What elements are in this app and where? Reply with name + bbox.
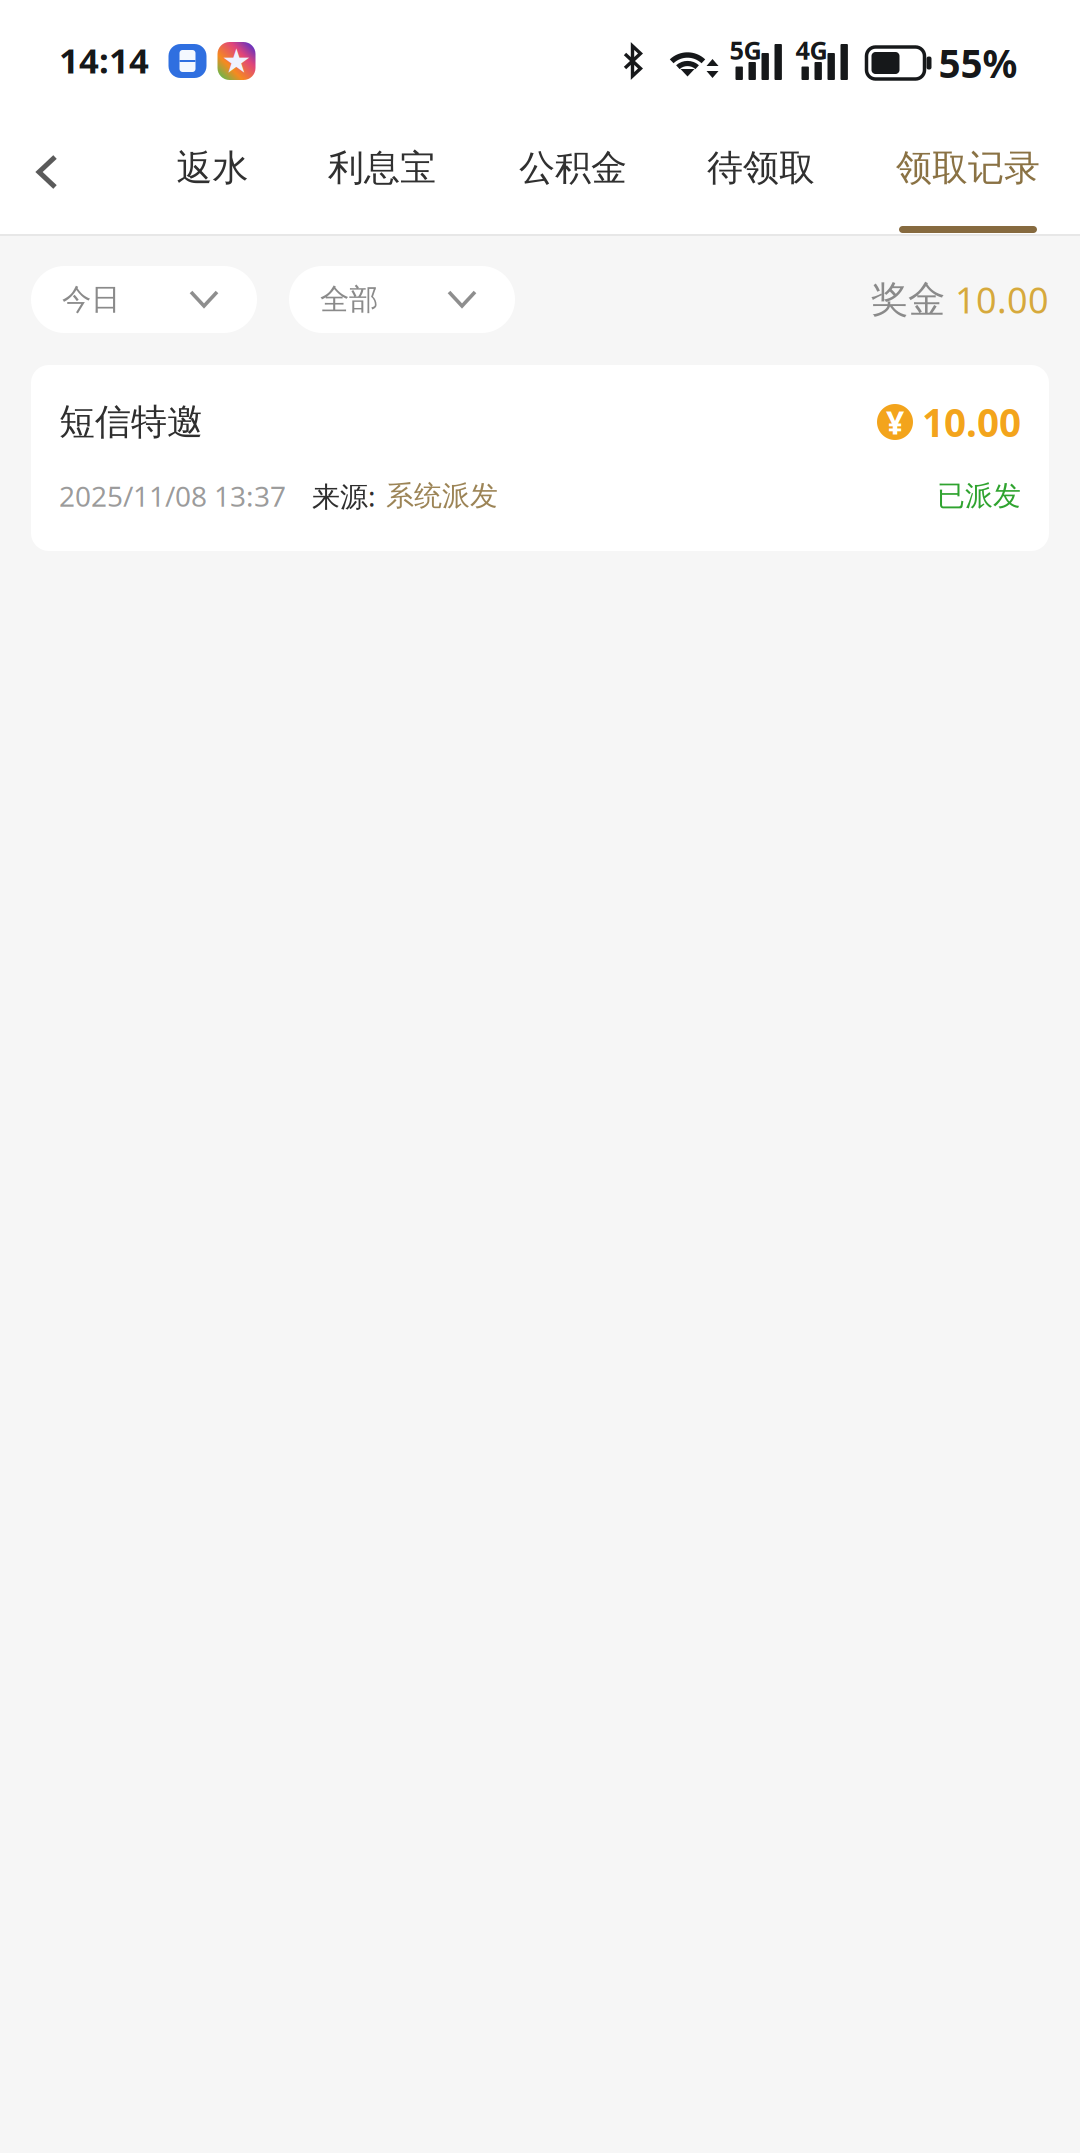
staticText: 待领取 [707,146,815,190]
staticText: 利息宝 [328,146,436,190]
staticText: 55% [938,37,1017,89]
staticText: 奖金 [871,277,945,322]
staticText: 短信特邀 [59,400,203,444]
button[interactable]: Back [1,110,93,234]
staticText: 公积金 [519,146,627,190]
staticText: 系统派发 [386,479,498,513]
button[interactable]: 短信特邀 [31,365,1049,551]
staticText: 5G [729,33,761,67]
staticText: 已派发 [937,479,1021,513]
button[interactable]: 公积金 [497,110,649,234]
staticText: 来源: [312,477,376,515]
staticText: 2025/11/08 13:37 [59,477,286,515]
staticText: 今日 [62,281,120,317]
staticText: 返水 [176,146,248,190]
staticText: 10.00 [955,276,1049,323]
staticText: ¥ [886,401,904,443]
staticText: 10.00 [922,396,1021,448]
staticText: 全部 [320,281,378,317]
button[interactable]: 今日 [31,266,257,333]
staticText: ★ [221,42,251,80]
button[interactable]: 全部 [289,266,515,333]
button[interactable]: 待领取 [685,110,837,234]
button[interactable]: 领取记录 [875,110,1061,234]
staticText: 14:14 [59,37,149,83]
staticText: 领取记录 [896,146,1040,190]
button[interactable]: 利息宝 [306,110,458,234]
button[interactable]: 返水 [152,110,272,234]
staticText: 4G [795,33,827,67]
